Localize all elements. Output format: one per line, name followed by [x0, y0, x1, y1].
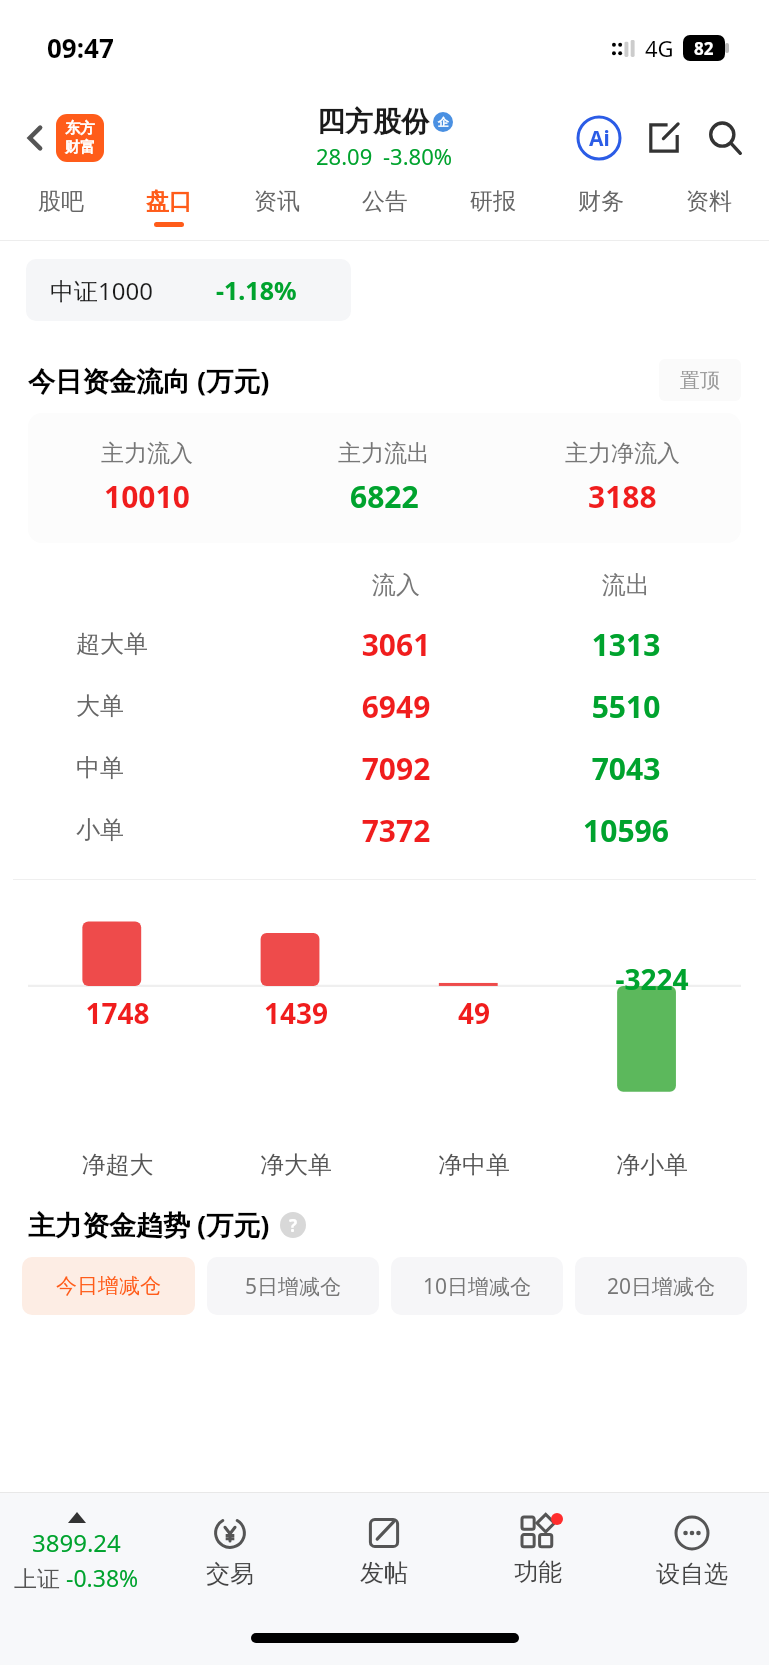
staticText: 发帖: [360, 1558, 408, 1588]
staticText: Ai: [589, 124, 610, 153]
staticText: -1.18%: [216, 273, 297, 307]
staticText: 6822: [350, 476, 419, 517]
staticText: 3061: [281, 624, 511, 665]
staticText: 7043: [511, 748, 741, 789]
button[interactable]: 今日增减仓: [22, 1257, 195, 1315]
staticText: 上证: [14, 1562, 66, 1593]
button[interactable]: 东方财富: [56, 114, 104, 162]
staticText: 7372: [281, 810, 511, 851]
staticText: 研报: [470, 187, 516, 216]
staticText: 流出: [511, 570, 741, 600]
staticText: 1439: [207, 994, 385, 1032]
button[interactable]: Search: [699, 112, 751, 164]
button[interactable]: 资讯: [223, 180, 331, 240]
staticText: 10日增减仓: [423, 1272, 532, 1301]
button[interactable]: 20日增减仓: [575, 1257, 747, 1315]
staticText: 中证1000: [50, 274, 153, 307]
staticText: 东方: [65, 119, 95, 138]
button[interactable]: 超大单: [28, 613, 741, 675]
staticText: 净大单: [207, 1150, 385, 1180]
button[interactable]: 主力流入: [28, 413, 741, 543]
staticText: -3.80%: [383, 141, 453, 171]
staticText: 功能: [514, 1557, 562, 1587]
staticText: 资讯: [254, 187, 300, 216]
staticText: 净小单: [563, 1150, 741, 1180]
staticText: 中单: [76, 753, 281, 783]
staticText: 四方股份: [317, 104, 429, 139]
button[interactable]: 研报: [439, 180, 547, 240]
button[interactable]: 置顶: [659, 359, 741, 401]
button[interactable]: 5日增减仓: [207, 1257, 379, 1315]
button[interactable]: 盘口: [115, 180, 223, 240]
button[interactable]: Help: [280, 1212, 306, 1238]
staticText: 4G: [645, 33, 674, 63]
button[interactable]: 财务: [547, 180, 655, 240]
button[interactable]: 功能: [461, 1493, 615, 1611]
button[interactable]: 公告: [331, 180, 439, 240]
button[interactable]: Share: [639, 113, 689, 163]
staticText: 主力流入: [101, 439, 193, 468]
staticText: 小单: [76, 815, 281, 845]
staticText: -0.38%: [66, 1562, 139, 1593]
button[interactable]: 3899.24: [0, 1493, 153, 1611]
staticText: 股吧: [38, 187, 84, 216]
staticText: 今日增减仓: [56, 1273, 161, 1299]
button[interactable]: Back: [14, 116, 58, 160]
staticText: 财富: [65, 138, 95, 157]
staticText: -3224: [563, 960, 741, 998]
staticText: 主力净流入: [565, 439, 680, 468]
staticText: 资料: [686, 187, 732, 216]
staticText: 3899.24: [32, 1526, 121, 1559]
button[interactable]: 股吧: [6, 180, 115, 240]
staticText: 企: [438, 115, 449, 129]
staticText: 盘口: [146, 187, 192, 216]
staticText: 净中单: [385, 1150, 563, 1180]
button[interactable]: 发帖: [307, 1493, 461, 1611]
staticText: 大单: [76, 691, 281, 721]
button[interactable]: 小单: [28, 799, 741, 861]
button[interactable]: 大单: [28, 675, 741, 737]
button[interactable]: 交易: [153, 1493, 307, 1611]
staticText: 5510: [511, 686, 741, 727]
button[interactable]: 中单: [28, 737, 741, 799]
staticText: 今日资金流向 (万元): [28, 362, 270, 399]
staticText: 10596: [511, 810, 741, 851]
button[interactable]: AI: [573, 112, 625, 164]
staticText: 7092: [281, 748, 511, 789]
button[interactable]: 资料: [655, 180, 763, 240]
staticText: 置顶: [680, 368, 720, 393]
staticText: 5日增减仓: [245, 1272, 342, 1301]
staticText: 净超大: [28, 1150, 207, 1180]
staticText: 1748: [28, 994, 207, 1032]
staticText: 09:47: [47, 30, 114, 65]
button[interactable]: 设自选: [615, 1493, 769, 1611]
staticText: 82: [694, 37, 714, 60]
staticText: 超大单: [76, 629, 281, 659]
staticText: 1313: [511, 624, 741, 665]
staticText: 流入: [281, 570, 511, 600]
staticText: 财务: [578, 187, 624, 216]
staticText: 主力资金趋势 (万元): [28, 1206, 270, 1243]
button[interactable]: 中证1000: [26, 259, 351, 321]
staticText: 10010: [104, 476, 190, 517]
staticText: 49: [385, 994, 563, 1032]
staticText: 主力流出: [338, 439, 430, 468]
staticText: 设自选: [656, 1559, 728, 1589]
staticText: 6949: [281, 686, 511, 727]
staticText: ?: [289, 1214, 298, 1237]
staticText: 28.09: [316, 141, 373, 171]
button[interactable]: 10日增减仓: [391, 1257, 563, 1315]
staticText: 20日增减仓: [607, 1272, 716, 1301]
staticText: 交易: [206, 1559, 254, 1589]
staticText: 公告: [362, 187, 408, 216]
staticText: 3188: [588, 476, 657, 517]
